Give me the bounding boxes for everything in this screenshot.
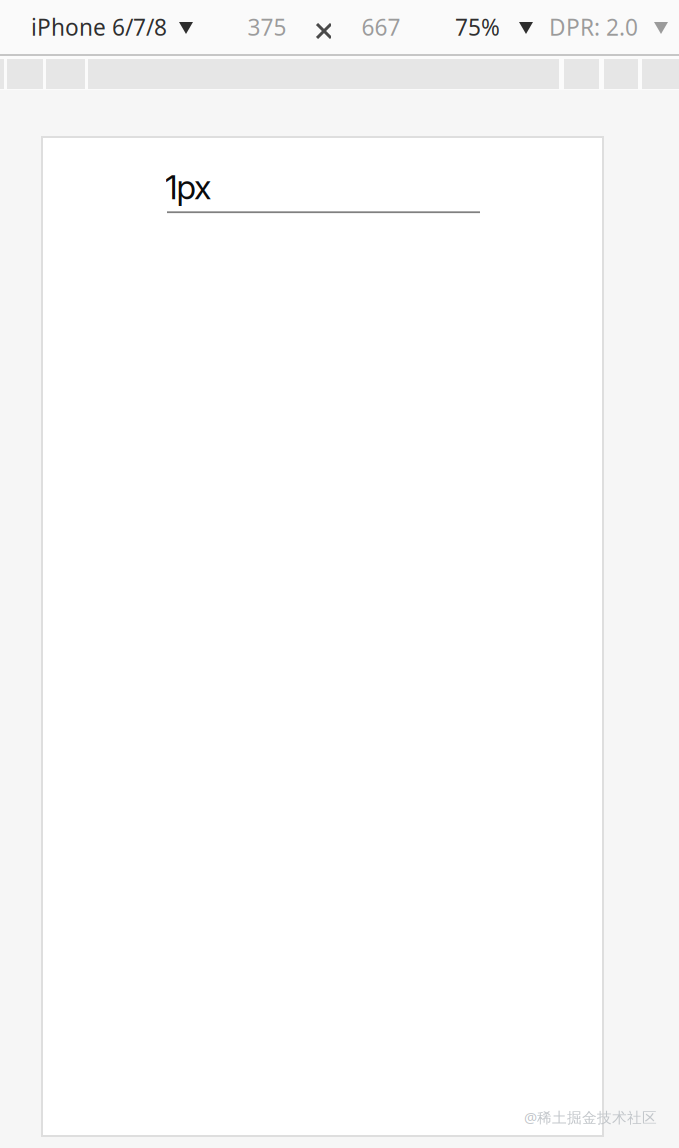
staticText: iPhone 6/7/8	[31, 12, 167, 42]
staticText: @稀土掘金技术社区	[524, 1107, 657, 1127]
button[interactable]: 75%	[455, 0, 533, 54]
button[interactable]: DPR: 2.0	[549, 0, 668, 54]
staticText: 75%	[455, 12, 500, 42]
button[interactable]: Width	[247, 0, 287, 54]
staticText: 1px	[165, 167, 211, 207]
staticText: DPR: 2.0	[549, 12, 638, 42]
staticText: 667	[361, 12, 400, 42]
button[interactable]: Height	[361, 0, 401, 54]
staticText: 375	[247, 12, 286, 42]
button[interactable]: iPhone 6/7/8	[0, 0, 203, 54]
